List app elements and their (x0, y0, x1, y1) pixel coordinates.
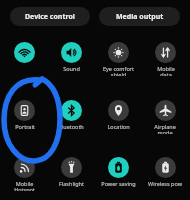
button[interactable]: Power saving (95, 157, 141, 191)
button[interactable]: Device control (10, 7, 90, 26)
staticText: Bluetooth (58, 123, 84, 130)
staticText: Wireless pow (148, 180, 182, 187)
button[interactable]: Eye comfort shield (95, 42, 141, 76)
staticText: Portrait (15, 123, 35, 130)
button[interactable]: Mobile Hotspot (1, 157, 47, 191)
button[interactable]: Bluetooth (48, 100, 94, 134)
staticText: Location (107, 123, 130, 130)
button[interactable]: Mobile data (142, 42, 188, 76)
staticText: Mobile Hotspot (14, 180, 35, 191)
button[interactable]: Airplane mode (142, 100, 188, 134)
button[interactable]: Sound (48, 42, 94, 76)
staticText: Mobile data (157, 65, 175, 76)
staticText: Airplane mode (154, 123, 176, 134)
button[interactable]: Wireless pow (142, 157, 188, 191)
button[interactable]: Media output (99, 7, 180, 26)
staticText: Media output (116, 12, 164, 22)
button[interactable]: Flashlight (48, 157, 94, 191)
staticText: Eye comfort shield (103, 65, 134, 76)
staticText: Sound (63, 65, 80, 72)
button[interactable]: Location (95, 100, 141, 134)
button[interactable]: Portrait (1, 100, 47, 134)
staticText: Device control (25, 12, 75, 22)
staticText: Power saving (101, 180, 136, 187)
staticText: Flashlight (59, 180, 84, 187)
button[interactable]: Wi-Fi (1, 42, 47, 76)
